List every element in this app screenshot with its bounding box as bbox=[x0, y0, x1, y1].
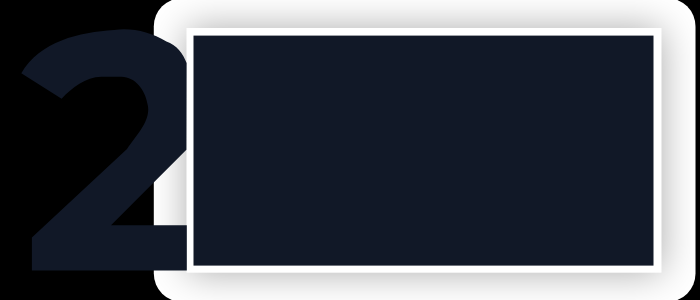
button[interactable]: Step 2 screenshot preview bbox=[0, 0, 700, 300]
